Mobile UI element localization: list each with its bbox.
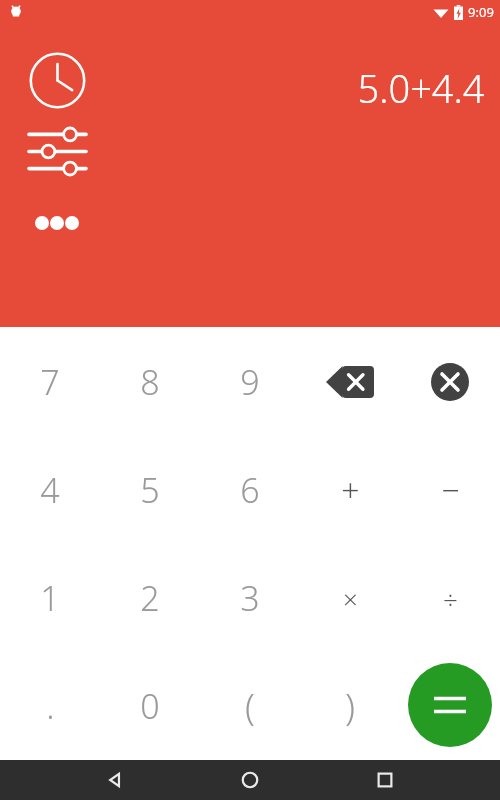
staticText: 1: [40, 575, 60, 621]
staticText: .: [46, 683, 55, 729]
staticText: 9:09: [468, 3, 494, 21]
button[interactable]: Backspace: [300, 327, 400, 436]
button[interactable]: 7: [0, 327, 100, 436]
button[interactable]: 1: [0, 544, 100, 652]
staticText: 8: [140, 359, 160, 405]
button[interactable]: ×: [300, 544, 400, 652]
staticText: ×: [343, 581, 358, 616]
button[interactable]: 4: [0, 436, 100, 544]
staticText: 5.0+4.4: [357, 62, 485, 114]
staticText: +: [341, 468, 360, 512]
button[interactable]: 8: [100, 327, 200, 436]
staticText: ÷: [443, 581, 458, 616]
button[interactable]: +: [300, 436, 400, 544]
button[interactable]: 0: [100, 652, 200, 760]
button[interactable]: More options: [32, 211, 86, 235]
staticText: 3: [240, 575, 260, 621]
button[interactable]: Home: [230, 760, 270, 800]
staticText: 6: [240, 467, 260, 513]
button[interactable]: Back: [95, 760, 135, 800]
button[interactable]: 5: [100, 436, 200, 544]
button[interactable]: −: [400, 436, 500, 544]
button[interactable]: Recents: [365, 760, 405, 800]
button[interactable]: 6: [200, 436, 300, 544]
button[interactable]: (: [200, 652, 300, 760]
staticText: 0: [140, 683, 160, 729]
button[interactable]: ): [300, 652, 400, 760]
staticText: 9: [240, 359, 260, 405]
button[interactable]: 9: [200, 327, 300, 436]
button[interactable]: Equals: [408, 663, 492, 747]
staticText: 2: [140, 575, 160, 621]
staticText: −: [441, 468, 460, 512]
button[interactable]: Switch keypad: [29, 129, 86, 174]
staticText: ): [345, 682, 355, 731]
staticText: 7: [40, 359, 60, 405]
button[interactable]: 2: [100, 544, 200, 652]
button[interactable]: 3: [200, 544, 300, 652]
staticText: 4: [40, 467, 60, 513]
button[interactable]: History: [29, 52, 86, 109]
staticText: 5: [140, 467, 160, 513]
button[interactable]: Clear: [400, 327, 500, 436]
button[interactable]: ÷: [400, 544, 500, 652]
staticText: (: [245, 682, 255, 731]
